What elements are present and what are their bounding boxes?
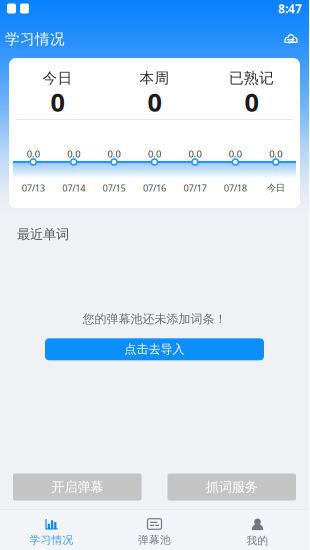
staticText: 学习情况	[29, 533, 73, 547]
button[interactable]: 弹幕池	[103, 509, 206, 550]
staticText: 07/15	[103, 182, 126, 194]
staticText: 07/16	[143, 182, 166, 194]
staticText: 0.0	[188, 148, 201, 160]
staticText: 本周	[139, 69, 169, 87]
staticText: 今日	[267, 182, 285, 194]
button[interactable]: 抓词服务	[167, 473, 296, 500]
staticText: 0.0	[148, 148, 161, 160]
staticText: 弹幕池	[138, 533, 171, 547]
staticText: 07/14	[62, 182, 85, 194]
staticText: 0	[244, 85, 258, 119]
staticText: 07/13	[22, 182, 45, 194]
staticText: 您的弹幕池还未添加词条！	[82, 312, 226, 326]
staticText: 0	[147, 85, 161, 119]
staticText: 07/17	[183, 182, 206, 194]
staticText: 抓词服务	[206, 479, 258, 495]
staticText: 0.0	[229, 148, 242, 160]
button[interactable]: 点击去导入	[45, 338, 264, 360]
staticText: 0	[50, 85, 64, 119]
staticText: 今日	[42, 69, 72, 87]
button[interactable]: 同步	[278, 27, 304, 51]
button[interactable]: 学习情况	[0, 509, 103, 550]
staticText: 07/18	[224, 182, 247, 194]
staticText: 最近单词	[17, 226, 69, 242]
staticText: 0.0	[108, 148, 121, 160]
staticText: 已熟记	[229, 69, 274, 87]
staticText: 8:47	[278, 0, 302, 16]
staticText: 学习情况	[5, 30, 65, 48]
staticText: 0.0	[27, 148, 40, 160]
staticText: 0.0	[269, 148, 282, 160]
staticText: 我的	[246, 534, 268, 547]
staticText: 点击去导入	[124, 342, 184, 357]
staticText: 0.0	[67, 148, 80, 160]
button[interactable]: 我的	[206, 509, 309, 550]
button[interactable]: 开启弹幕	[13, 473, 141, 500]
staticText: 开启弹幕	[51, 479, 103, 495]
